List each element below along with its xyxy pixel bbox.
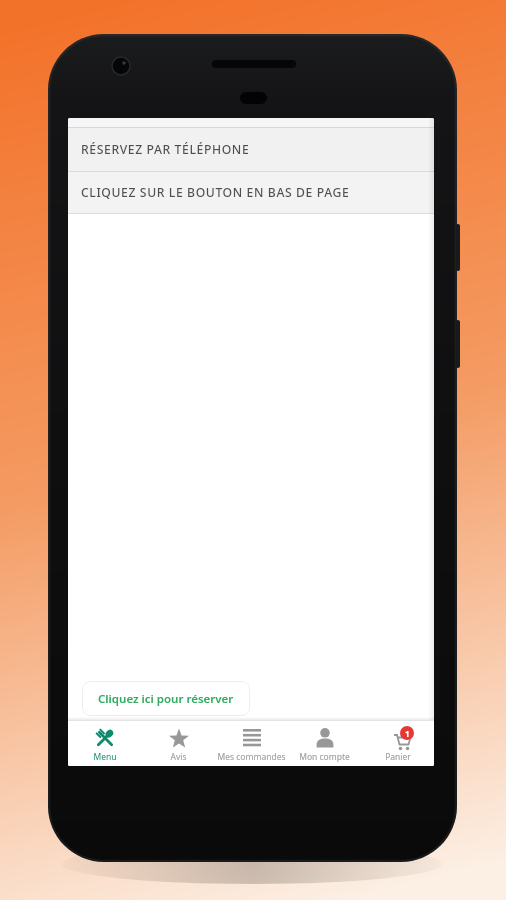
staticText: Mes commandes (217, 751, 286, 763)
button[interactable]: Mon compte (288, 721, 361, 766)
staticText: Menu (93, 751, 117, 763)
staticText: Avis (170, 751, 187, 763)
staticText: 1 (405, 728, 410, 739)
button[interactable]: RÉSERVEZ PAR TÉLÉPHONE (68, 128, 434, 171)
button[interactable]: Mes commandes (215, 721, 288, 766)
staticText: Panier (385, 751, 411, 763)
staticText: RÉSERVEZ PAR TÉLÉPHONE (81, 141, 250, 158)
button[interactable]: 1 (361, 721, 434, 766)
button[interactable]: CLIQUEZ SUR LE BOUTON EN BAS DE PAGE (68, 172, 434, 213)
staticText: Mon compte (299, 751, 350, 763)
button[interactable]: Avis (142, 721, 215, 766)
button[interactable]: Cliquez ici pour réserver (82, 681, 250, 716)
button[interactable]: Menu (68, 721, 142, 766)
staticText: Cliquez ici pour réserver (98, 691, 234, 707)
staticText: CLIQUEZ SUR LE BOUTON EN BAS DE PAGE (81, 184, 350, 201)
